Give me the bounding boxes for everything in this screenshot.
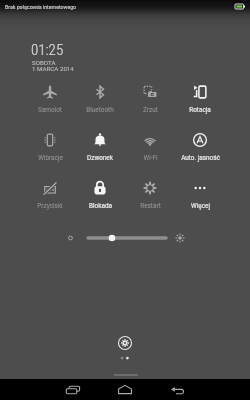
button[interactable]: Jasność bbox=[64, 230, 186, 246]
button[interactable]: Zrzut bbox=[125, 80, 175, 128]
staticText: Więcej bbox=[191, 202, 210, 210]
staticText: Przyciski bbox=[37, 202, 63, 210]
staticText: Zrzut bbox=[143, 106, 158, 114]
button[interactable]: Samolot bbox=[25, 80, 75, 128]
button[interactable]: Więcej bbox=[175, 176, 225, 224]
staticText: Wi-Fi bbox=[143, 154, 158, 162]
staticText: Samolot bbox=[38, 106, 62, 114]
button[interactable]: Wi-Fi bbox=[125, 128, 175, 176]
button[interactable]: Back bbox=[163, 379, 192, 400]
button[interactable]: Recent apps bbox=[58, 379, 88, 400]
button[interactable]: Ustawienia bbox=[115, 333, 135, 353]
button[interactable]: Przyciski bbox=[25, 176, 75, 224]
staticText: Auto. jasność bbox=[181, 154, 220, 162]
staticText: Bluetooth bbox=[86, 106, 114, 114]
staticText: 1 MARCA 2014 bbox=[32, 65, 74, 72]
staticText: 01:25 bbox=[31, 41, 64, 59]
button[interactable]: Wibracje bbox=[25, 128, 75, 176]
button[interactable]: Rotacja bbox=[175, 80, 225, 128]
staticText: Blokada bbox=[89, 202, 112, 210]
staticText: Rotacja bbox=[189, 106, 211, 114]
staticText: SOBOTA bbox=[32, 59, 56, 66]
button[interactable]: Home bbox=[110, 379, 140, 400]
staticText: Restart bbox=[140, 202, 161, 210]
button[interactable]: Auto. jasność bbox=[175, 128, 225, 176]
button[interactable]: Dzwonek bbox=[75, 128, 125, 176]
button[interactable]: Blokada bbox=[75, 176, 125, 224]
staticText: Wibracje bbox=[38, 154, 63, 162]
button[interactable]: Bluetooth bbox=[75, 80, 125, 128]
staticText: Dzwonek bbox=[87, 154, 113, 162]
staticText: Brak połączenia internetowego bbox=[5, 4, 77, 10]
button[interactable]: Restart bbox=[125, 176, 175, 224]
